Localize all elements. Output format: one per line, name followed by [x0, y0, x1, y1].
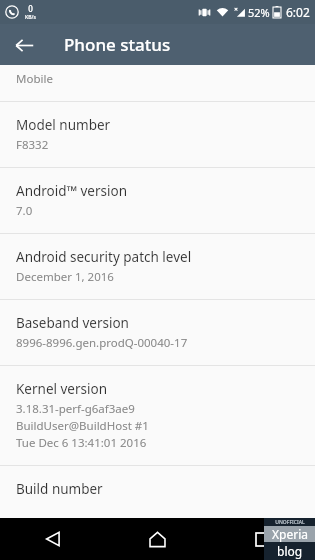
staticText: Android™ version [16, 182, 127, 200]
button[interactable]: Model number [0, 102, 315, 167]
button[interactable]: Android™ version [0, 168, 315, 233]
button[interactable]: Recent apps [210, 518, 315, 560]
staticText: Build number [16, 480, 103, 498]
staticText: 6:02 [286, 4, 310, 20]
staticText: UNOFFICIAL [275, 519, 305, 526]
button[interactable]: Back [0, 518, 105, 560]
staticText: Phone status [64, 33, 171, 56]
button[interactable]: Navigate up [6, 27, 42, 63]
staticText: F8332 [16, 137, 49, 153]
button[interactable]: Build number [0, 466, 315, 518]
staticText: 3.18.31-perf-g6af3ae9 [16, 401, 135, 417]
staticText: Android security patch level [16, 248, 192, 266]
button[interactable]: Kernel version [0, 366, 315, 465]
staticText: Kernel version [16, 380, 108, 398]
staticText: 0 [28, 3, 33, 14]
staticText: December 1, 2016 [16, 269, 114, 285]
button[interactable]: Baseband version [0, 300, 315, 365]
staticText: KB/s [25, 14, 36, 21]
staticText: 52% [248, 5, 270, 20]
button[interactable]: Home [105, 518, 210, 560]
button[interactable]: Mobile [0, 65, 315, 101]
staticText: BuildUser@BuildHost #1 [16, 418, 149, 434]
staticText: blog [277, 543, 303, 559]
staticText: Mobile [16, 71, 53, 87]
staticText: Model number [16, 116, 111, 134]
staticText: 8996-8996.gen.prodQ-00040-17 [16, 335, 188, 351]
staticText: Baseband version [16, 314, 129, 332]
button[interactable]: Android security patch level [0, 234, 315, 299]
staticText: 7.0 [16, 203, 33, 219]
staticText: Xperia [272, 526, 308, 542]
staticText: Tue Dec 6 13:41:01 2016 [16, 435, 147, 451]
